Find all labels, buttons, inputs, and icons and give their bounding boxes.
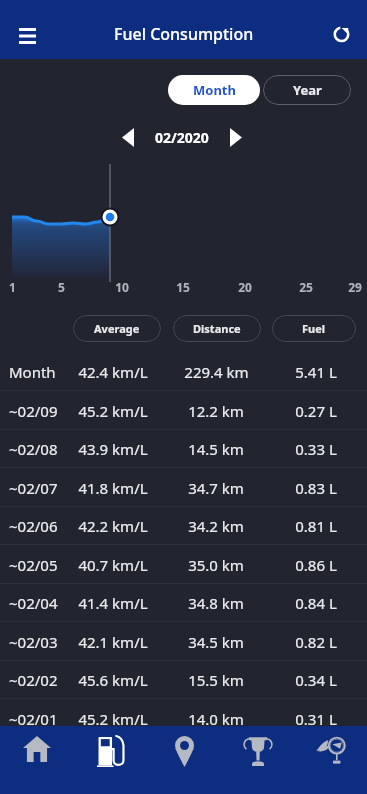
- staticText: ~02/03: [9, 632, 58, 652]
- staticText: 229.4 km: [184, 362, 249, 382]
- staticText: 10: [115, 279, 129, 295]
- button[interactable]: Distance: [173, 315, 261, 342]
- staticText: 12.2 km: [188, 401, 244, 421]
- staticText: 0.86 L: [295, 555, 337, 575]
- staticText: 0.83 L: [295, 478, 337, 498]
- staticText: ~02/04: [9, 593, 58, 613]
- staticText: 1: [9, 279, 16, 295]
- button[interactable]: Month: [0, 352, 367, 391]
- staticText: 14.5 km: [188, 439, 244, 459]
- staticText: Average: [94, 321, 140, 336]
- button[interactable]: Previous month: [113, 122, 143, 153]
- button[interactable]: ~02/09: [0, 391, 367, 430]
- button[interactable]: Speed: [294, 726, 367, 794]
- staticText: 0.82 L: [295, 632, 337, 652]
- staticText: 0.81 L: [295, 516, 337, 536]
- staticText: Fuel Consumption: [114, 23, 254, 45]
- button[interactable]: Refresh: [320, 13, 362, 55]
- staticText: 0.84 L: [295, 593, 337, 613]
- button[interactable]: Year: [263, 75, 351, 105]
- button[interactable]: ~02/02: [0, 660, 367, 699]
- staticText: 41.4 km/L: [78, 593, 148, 613]
- button[interactable]: Home: [0, 726, 74, 794]
- staticText: ~02/01: [9, 709, 58, 729]
- staticText: Month: [193, 81, 236, 99]
- staticText: 29: [348, 279, 362, 295]
- staticText: 45.6 km/L: [78, 670, 148, 690]
- staticText: 35.0 km: [188, 555, 244, 575]
- staticText: 34.8 km: [188, 593, 244, 613]
- staticText: 34.7 km: [188, 478, 244, 498]
- staticText: Year: [293, 81, 322, 99]
- staticText: Fuel: [302, 321, 326, 336]
- button[interactable]: Places: [148, 726, 221, 794]
- staticText: 5.41 L: [295, 362, 337, 382]
- staticText: 43.9 km/L: [78, 439, 148, 459]
- staticText: ~02/02: [9, 670, 58, 690]
- button[interactable]: ~02/01: [0, 699, 367, 738]
- button[interactable]: Fuel: [74, 726, 148, 794]
- button[interactable]: Month: [168, 75, 260, 105]
- staticText: ~02/09: [9, 401, 58, 421]
- staticText: 0.31 L: [295, 709, 337, 729]
- staticText: ~02/06: [9, 516, 58, 536]
- staticText: 5: [58, 279, 65, 295]
- staticText: 41.8 km/L: [78, 478, 148, 498]
- button[interactable]: Average: [73, 315, 161, 342]
- staticText: 25: [299, 279, 313, 295]
- button[interactable]: ~02/05: [0, 545, 367, 584]
- staticText: 14.0 km: [188, 709, 244, 729]
- staticText: 34.2 km: [188, 516, 244, 536]
- staticText: 45.2 km/L: [78, 401, 148, 421]
- button[interactable]: Next month: [221, 122, 251, 153]
- button[interactable]: Menu: [5, 14, 49, 58]
- button[interactable]: ~02/08: [0, 429, 367, 468]
- staticText: Month: [9, 362, 56, 382]
- staticText: 42.1 km/L: [78, 632, 148, 652]
- staticText: ~02/05: [9, 555, 58, 575]
- staticText: 0.33 L: [295, 439, 337, 459]
- staticText: 02/2020: [155, 128, 209, 147]
- staticText: 0.34 L: [295, 670, 337, 690]
- staticText: 42.2 km/L: [78, 516, 148, 536]
- staticText: 45.2 km/L: [78, 709, 148, 729]
- staticText: ~02/08: [9, 439, 58, 459]
- button[interactable]: ~02/03: [0, 622, 367, 661]
- button[interactable]: ~02/07: [0, 468, 367, 507]
- staticText: ~02/07: [9, 478, 58, 498]
- button[interactable]: Awards: [221, 726, 294, 794]
- staticText: 15.5 km: [188, 670, 244, 690]
- button[interactable]: ~02/06: [0, 506, 367, 545]
- button[interactable]: ~02/04: [0, 583, 367, 622]
- staticText: 20: [238, 279, 252, 295]
- button[interactable]: Fuel: [272, 315, 356, 342]
- staticText: 42.4 km/L: [78, 362, 148, 382]
- staticText: Distance: [193, 321, 241, 336]
- staticText: 40.7 km/L: [78, 555, 148, 575]
- staticText: 15: [176, 279, 190, 295]
- staticText: 34.5 km: [188, 632, 244, 652]
- staticText: 0.27 L: [295, 401, 337, 421]
